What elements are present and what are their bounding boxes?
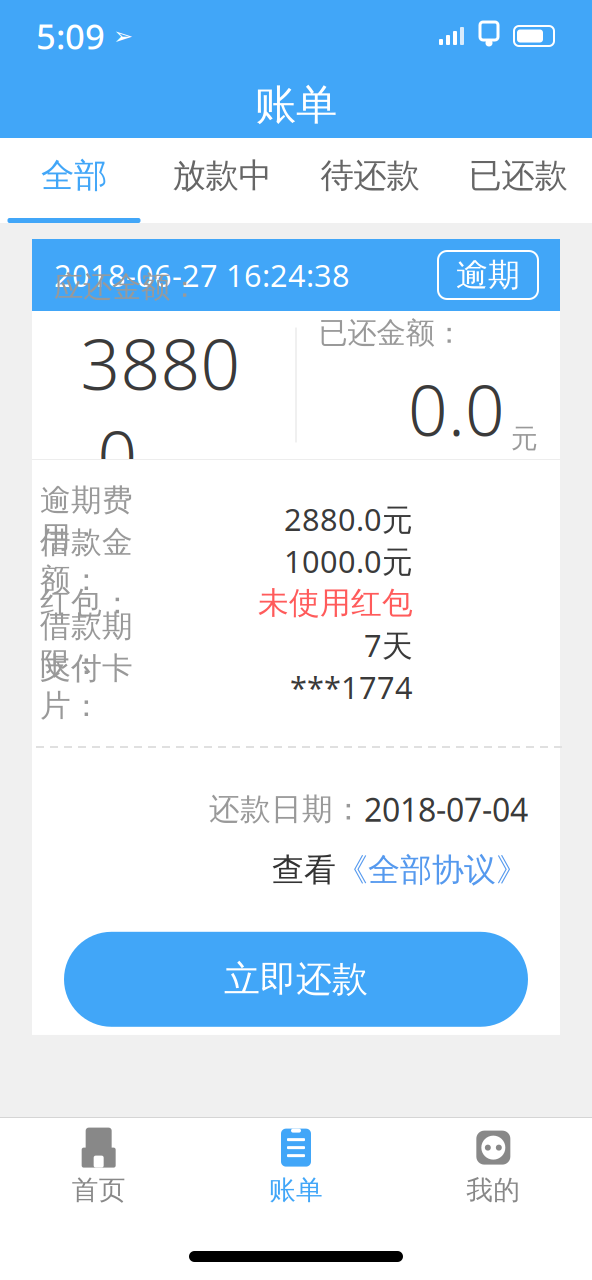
staticText: 3880.0: [80, 317, 240, 501]
staticText: 已还款: [468, 155, 567, 196]
staticText: 7天: [364, 625, 413, 665]
staticText: 我的: [466, 1174, 520, 1206]
staticText: 1000.0元: [284, 541, 413, 581]
staticText: 5:09: [36, 13, 105, 59]
staticText: 2018-06-27 16:24:38: [54, 255, 350, 295]
button[interactable]: 首页: [0, 1118, 197, 1216]
staticText: 还款日期：: [209, 790, 364, 828]
staticText: 待还款: [320, 155, 419, 196]
button[interactable]: 账单: [197, 1118, 395, 1216]
staticText: 红包：: [40, 584, 133, 622]
button[interactable]: 查看: [32, 850, 560, 890]
button[interactable]: 待还款: [296, 138, 444, 223]
staticText: 《全部协议》: [336, 850, 528, 890]
button[interactable]: 逾期: [438, 251, 538, 299]
button[interactable]: 放款中: [148, 138, 296, 223]
staticText: 借款金额：: [40, 523, 133, 599]
staticText: 元: [511, 422, 538, 455]
staticText: 未使用红包: [258, 584, 413, 622]
button[interactable]: 我的: [395, 1118, 592, 1216]
staticText: ***1774: [290, 667, 413, 707]
staticText: 2880.0元: [284, 499, 413, 539]
staticText: 借款期限：: [40, 607, 133, 683]
staticText: 放款中: [172, 155, 271, 196]
staticText: 已还金额：: [318, 315, 463, 351]
staticText: 账单: [269, 1174, 323, 1206]
button[interactable]: 全部: [0, 138, 148, 223]
staticText: 逾期: [456, 255, 520, 295]
staticText: 立即还款: [224, 957, 368, 1001]
staticText: 逾期费用：: [40, 481, 133, 557]
staticText: 0.0: [408, 363, 505, 455]
staticText: ➢: [105, 22, 133, 50]
staticText: 首页: [72, 1174, 126, 1206]
button[interactable]: 立即还款: [64, 932, 528, 1027]
button[interactable]: 已还款: [444, 138, 592, 223]
staticText: 账单: [255, 80, 337, 130]
staticText: 全部: [41, 155, 107, 196]
staticText: 应还金额：: [54, 269, 199, 305]
staticText: 查看: [272, 850, 336, 890]
staticText: 2018-07-04: [364, 788, 528, 830]
staticText: 支付卡片：: [40, 649, 133, 725]
